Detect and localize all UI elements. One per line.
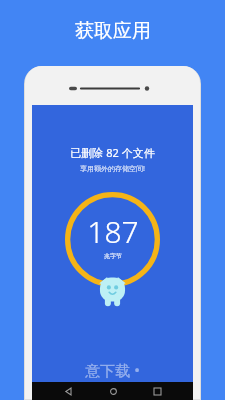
staticText: 享用额外的存储空间! — [80, 164, 145, 174]
staticText: 兆字节 — [104, 252, 122, 260]
staticText: 已删除 82 个文件 — [70, 145, 155, 160]
staticText: 187 — [87, 211, 139, 252]
button[interactable]: Back — [59, 382, 77, 400]
button[interactable]: Home — [104, 382, 122, 400]
staticText: 意下载 • NBWYXH.COM.C — [32, 360, 193, 400]
staticText: 获取应用 — [75, 19, 151, 43]
button[interactable]: 获取应用 — [0, 19, 225, 43]
button[interactable]: 187 megabytes freed — [65, 192, 160, 287]
button[interactable]: Recents — [148, 382, 166, 400]
